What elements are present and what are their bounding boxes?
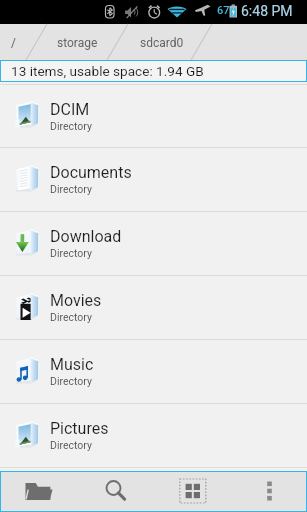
button[interactable]: / — [0, 24, 26, 60]
staticText: Directory — [50, 375, 92, 387]
staticText: Directory — [50, 439, 92, 451]
staticText: DCIM — [50, 100, 90, 119]
staticText: Movies — [50, 291, 102, 310]
staticText: Directory — [50, 311, 92, 323]
button[interactable]: Browse files — [1, 472, 78, 511]
button[interactable]: Grid view — [154, 472, 230, 511]
staticText: / — [11, 36, 16, 50]
staticText: Directory — [50, 183, 92, 195]
button[interactable]: Documents — [0, 148, 307, 211]
staticText: Pictures — [50, 419, 109, 438]
staticText: Documents — [50, 163, 132, 182]
button[interactable]: storage — [26, 24, 129, 60]
button[interactable]: More options — [230, 472, 306, 511]
button[interactable]: Movies — [0, 276, 307, 339]
button[interactable]: Search — [78, 472, 154, 511]
staticText: Directory — [50, 247, 92, 259]
button[interactable]: Download — [0, 212, 307, 275]
button[interactable]: DCIM — [0, 85, 307, 147]
staticText: Directory — [50, 120, 92, 132]
button[interactable]: Pictures — [0, 404, 307, 467]
staticText: sdcard0 — [140, 36, 184, 50]
button[interactable]: Music — [0, 340, 307, 403]
staticText: 67 — [217, 4, 230, 17]
staticText: Download — [50, 227, 122, 246]
button[interactable]: sdcard0 — [107, 24, 217, 60]
staticText: 13 items, usable space: 1.94 GB — [11, 63, 204, 79]
staticText: Music — [50, 355, 94, 374]
staticText: 6:48 PM — [241, 3, 293, 19]
staticText: storage — [57, 36, 98, 50]
